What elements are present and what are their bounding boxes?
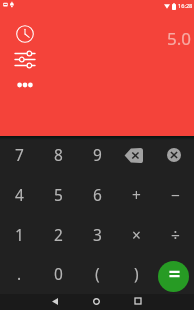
button[interactable]: Clear [167,148,181,162]
staticText: ( [95,263,100,284]
staticText: + [132,184,141,205]
staticText: − [171,184,180,205]
button[interactable]: 2 [41,214,75,254]
button[interactable]: 6 [80,174,114,214]
button[interactable]: ) [119,253,153,293]
staticText: 9 [93,144,102,165]
staticText: 3 [93,224,102,245]
button[interactable]: Settings [10,44,40,74]
button[interactable]: + [119,174,153,214]
staticText: 1 [15,224,24,245]
button[interactable]: 9 [80,134,114,174]
button[interactable]: 5 [41,174,75,214]
staticText: 7 [15,144,24,165]
staticText: . [17,263,22,284]
button[interactable]: Equals [158,261,189,292]
button[interactable]: . [2,253,36,293]
button[interactable]: Back [47,293,63,309]
button[interactable]: Recents [130,293,146,309]
staticText: 0 [54,263,63,284]
staticText: 16:28 [178,2,193,10]
button[interactable]: Backspace [124,148,143,163]
staticText: 5 [54,184,63,205]
staticText: 2 [54,224,63,245]
button[interactable]: 4 [2,174,36,214]
staticText: × [132,224,141,245]
button[interactable]: × [119,214,153,254]
button[interactable]: Home [88,293,104,309]
button[interactable]: 1 [2,214,36,254]
button[interactable]: ÷ [158,214,192,254]
button[interactable]: ( [80,253,114,293]
button[interactable]: − [158,174,192,214]
button[interactable]: 7 [2,134,36,174]
button[interactable]: History [10,19,40,49]
button[interactable]: More options [10,70,40,100]
staticText: 6 [93,184,102,205]
button[interactable]: 0 [41,253,75,293]
staticText: 8 [54,144,63,165]
staticText: 5.0 [167,27,192,50]
staticText: ) [134,263,139,284]
staticText: ÷ [171,224,180,245]
staticText: 4 [15,184,24,205]
button[interactable]: 3 [80,214,114,254]
button[interactable]: 8 [41,134,75,174]
